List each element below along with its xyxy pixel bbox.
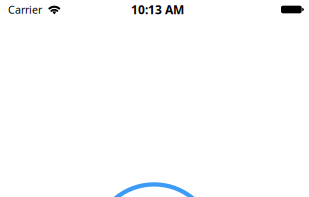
staticText: 10:13 AM [131,1,184,17]
staticText: Carrier [8,2,42,17]
button[interactable]: Start [0,0,309,197]
